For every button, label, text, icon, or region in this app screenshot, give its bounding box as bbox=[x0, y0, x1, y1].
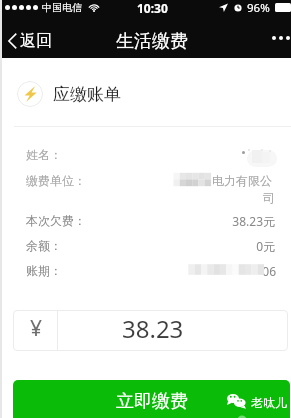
staticText: 38.23 bbox=[122, 312, 184, 345]
staticText: 0元 bbox=[0, 238, 275, 254]
staticText: 账期： bbox=[26, 263, 62, 278]
button[interactable]: 立即缴费 bbox=[13, 380, 290, 418]
staticText: 10:30 bbox=[137, 0, 168, 15]
staticText: 老呔儿 bbox=[251, 395, 287, 410]
staticText: 司 bbox=[263, 190, 275, 205]
staticText: 38.23元 bbox=[0, 213, 275, 229]
button[interactable]: ¥ bbox=[13, 310, 288, 351]
staticText: 应缴账单 bbox=[53, 84, 121, 105]
staticText: 生活缴费 bbox=[116, 30, 188, 53]
staticText: ¥ bbox=[30, 314, 43, 343]
staticText: 06 bbox=[0, 263, 276, 279]
button[interactable]: 返回 bbox=[8, 23, 52, 59]
staticText: 余额： bbox=[26, 238, 62, 253]
button[interactable]: More options bbox=[272, 20, 290, 56]
staticText: 返回 bbox=[20, 31, 52, 51]
staticText: 电力有限公 bbox=[212, 173, 272, 188]
staticText: 中国电信 bbox=[42, 1, 82, 14]
staticText: 姓名： bbox=[26, 147, 62, 162]
staticText: 本次欠费： bbox=[26, 213, 86, 228]
staticText: 96% bbox=[247, 0, 270, 15]
staticText: 缴费单位： bbox=[26, 173, 86, 188]
staticText: 立即缴费 bbox=[116, 390, 188, 413]
